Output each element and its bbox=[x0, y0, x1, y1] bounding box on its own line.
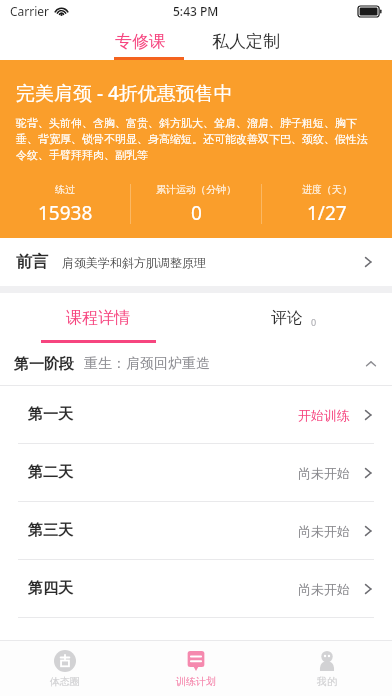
staticText: 专修课 bbox=[115, 31, 166, 52]
staticText: 驼背、头前伸、含胸、富贵、斜方肌大、耸肩、溜肩、脖子粗短、胸下垂、背宽厚、锁骨不… bbox=[16, 116, 378, 162]
button[interactable]: 专修课 bbox=[104, 22, 176, 60]
staticText: 评论 bbox=[271, 308, 303, 328]
staticText: 0 bbox=[311, 316, 317, 328]
staticText: 0 bbox=[191, 200, 202, 226]
staticText: 第三天 bbox=[28, 521, 73, 540]
other: 体态圈 bbox=[54, 650, 76, 672]
staticText: 5:43 PM bbox=[173, 3, 219, 19]
button[interactable]: 前言 bbox=[0, 238, 392, 286]
staticText: 15938 bbox=[38, 200, 93, 226]
staticText: 私人定制 bbox=[212, 31, 280, 52]
button[interactable]: 第四天 bbox=[0, 560, 392, 617]
staticText: 累计运动（分钟） bbox=[156, 183, 236, 196]
staticText: 完美肩颈 - 4折优惠预售中 bbox=[16, 80, 233, 106]
button[interactable]: 我的 bbox=[261, 641, 392, 696]
staticText: 体态圈 bbox=[50, 675, 80, 688]
button[interactable]: 第二天 bbox=[0, 444, 392, 501]
staticText: 开始训练 bbox=[298, 407, 350, 423]
staticText: 1/27 bbox=[307, 200, 347, 226]
button[interactable]: 第三天 bbox=[0, 502, 392, 559]
staticText: 尚未开始 bbox=[298, 523, 350, 539]
staticText: 肩颈美学和斜方肌调整原理 bbox=[62, 255, 206, 270]
button[interactable]: 课程详情 bbox=[0, 293, 196, 343]
staticText: 尚未开始 bbox=[298, 465, 350, 481]
staticText: 重生：肩颈回炉重造 bbox=[84, 355, 210, 373]
staticText: 第二天 bbox=[28, 463, 73, 482]
staticText: 训练计划 bbox=[176, 675, 216, 688]
staticText: 第四天 bbox=[28, 579, 73, 598]
button[interactable]: 体态圈 bbox=[0, 641, 130, 696]
staticText: 练过 bbox=[55, 183, 75, 196]
button[interactable]: 第一阶段 bbox=[0, 343, 392, 385]
staticText: 前言 bbox=[16, 252, 48, 272]
button[interactable]: 评论 bbox=[196, 293, 392, 343]
staticText: 我的 bbox=[317, 675, 337, 688]
other: 我的 bbox=[316, 650, 338, 672]
staticText: 课程详情 bbox=[66, 308, 130, 328]
staticText: Carrier bbox=[10, 3, 50, 19]
staticText: 尚未开始 bbox=[298, 581, 350, 597]
button[interactable]: 私人定制 bbox=[200, 22, 292, 60]
staticText: 第一阶段 bbox=[14, 355, 74, 374]
staticText: 进度（天） bbox=[302, 183, 352, 196]
staticText: 第一天 bbox=[28, 405, 73, 424]
button[interactable]: 训练计划 bbox=[130, 641, 261, 696]
button[interactable]: 第一天 bbox=[0, 386, 392, 443]
other: 训练计划 bbox=[185, 650, 207, 672]
